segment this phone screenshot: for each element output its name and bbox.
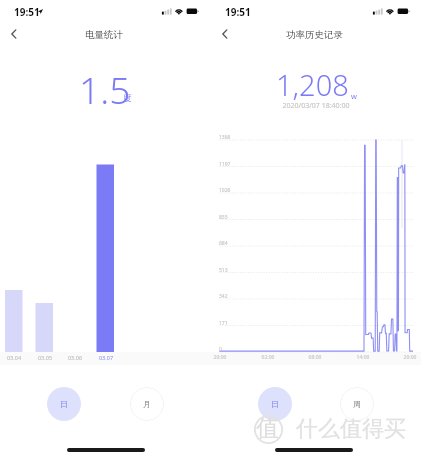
button[interactable]: 日: [258, 387, 292, 421]
staticText: 度: [123, 93, 132, 104]
staticText: 2020/03/07 18:40:00: [211, 101, 421, 111]
staticText: 电量统计: [85, 29, 123, 41]
staticText: 513: [219, 267, 239, 274]
staticText: 20:00: [208, 354, 232, 361]
staticText: 02:00: [256, 354, 280, 361]
staticText: 1368: [219, 134, 239, 141]
staticText: 03.05: [30, 354, 60, 361]
staticText: 日: [271, 399, 279, 409]
staticText: 684: [219, 240, 239, 247]
button[interactable]: 周: [340, 387, 374, 421]
staticText: 功率历史记录: [286, 29, 343, 41]
staticText: 08:00: [303, 354, 327, 361]
staticText: 14:00: [351, 354, 375, 361]
staticText: 什么值得买: [296, 415, 406, 443]
staticText: 03.06: [60, 354, 90, 361]
staticText: 03.07: [91, 354, 121, 361]
button[interactable]: Back: [213, 22, 237, 46]
staticText: w: [351, 91, 357, 101]
staticText: 20:00: [398, 354, 421, 361]
button[interactable]: 月: [130, 387, 164, 421]
button[interactable]: 日: [47, 387, 81, 421]
staticText: 855: [219, 214, 239, 221]
staticText: 1.5: [79, 64, 131, 114]
staticText: 值: [256, 414, 279, 443]
staticText: 日: [60, 399, 68, 409]
staticText: 周: [353, 399, 361, 409]
button[interactable]: Back: [2, 22, 26, 46]
staticText: 1,208: [276, 65, 349, 104]
staticText: 0: [219, 346, 239, 353]
staticText: 342: [219, 293, 239, 300]
staticText: 19:51: [225, 5, 251, 19]
staticText: 月: [143, 399, 151, 409]
staticText: 1197: [219, 161, 239, 168]
staticText: 03.04: [0, 354, 29, 361]
staticText: 171: [219, 320, 239, 327]
staticText: 1026: [219, 187, 239, 194]
staticText: 19:51: [14, 5, 40, 19]
